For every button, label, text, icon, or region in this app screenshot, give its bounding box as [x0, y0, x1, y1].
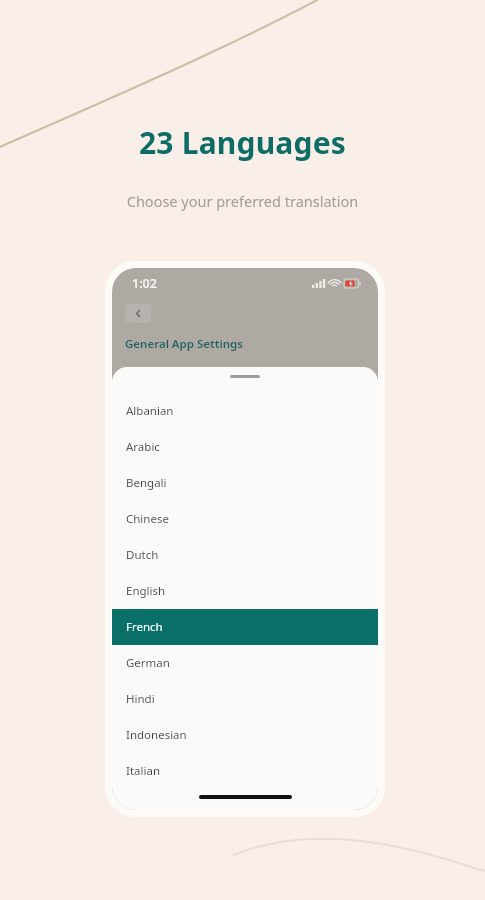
- staticText: German: [126, 655, 170, 671]
- button[interactable]: German: [112, 645, 378, 681]
- staticText: French: [126, 619, 163, 635]
- staticText: 1:02: [132, 275, 157, 292]
- button[interactable]: Arabic: [112, 429, 378, 465]
- button[interactable]: Hindi: [112, 681, 378, 717]
- staticText: Dutch: [126, 547, 159, 563]
- button[interactable]: Back: [125, 304, 151, 323]
- staticText: Chinese: [126, 511, 169, 527]
- button[interactable]: Chinese: [112, 501, 378, 537]
- staticText: English: [126, 583, 166, 599]
- staticText: Choose your preferred translation: [0, 191, 485, 211]
- staticText: Arabic: [126, 439, 160, 455]
- staticText: Albanian: [126, 403, 174, 419]
- button[interactable]: Albanian: [112, 393, 378, 429]
- staticText: Hindi: [126, 691, 155, 707]
- button[interactable]: French: [112, 609, 378, 645]
- button[interactable]: Bengali: [112, 465, 378, 501]
- staticText: Bengali: [126, 475, 167, 491]
- staticText: General App Settings: [125, 336, 243, 352]
- staticText: 23 Languages: [0, 122, 485, 163]
- button[interactable]: Indonesian: [112, 717, 378, 753]
- button[interactable]: English: [112, 573, 378, 609]
- staticText: Indonesian: [126, 727, 187, 743]
- button[interactable]: Italian: [112, 753, 378, 789]
- button[interactable]: Dutch: [112, 537, 378, 573]
- staticText: Italian: [126, 763, 160, 779]
